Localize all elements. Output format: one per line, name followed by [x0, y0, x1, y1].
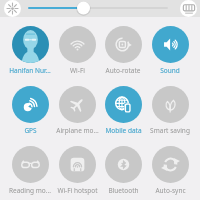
button[interactable]: Hanifan Nur... [8, 26, 52, 75]
staticText: Smart saving [150, 126, 190, 135]
staticText: Wi-Fi hotspot [57, 186, 98, 195]
button[interactable]: Wi-Fi [55, 26, 99, 75]
staticText: Hanifan Nur... [9, 66, 51, 75]
button[interactable]: Auto brightness [180, 0, 197, 17]
staticText: Sound [160, 66, 180, 75]
staticText: Mobile data [105, 126, 142, 135]
staticText: GPS [24, 126, 37, 135]
staticText: Reading mo... [9, 186, 51, 195]
button[interactable]: Auto-sync [148, 146, 192, 195]
button[interactable]: Brightness [4, 0, 21, 17]
staticText: Airplane mo... [56, 126, 99, 135]
button[interactable]: Mobile data [101, 86, 145, 135]
staticText: Wi-Fi [70, 66, 85, 75]
button[interactable]: Smart saving [148, 86, 192, 135]
button[interactable]: Wi-Fi hotspot [55, 146, 99, 195]
button[interactable]: Auto-rotate [101, 26, 145, 75]
button[interactable]: Airplane mo... [55, 86, 99, 135]
staticText: Auto-rotate [105, 66, 141, 75]
button[interactable]: Sound [148, 26, 192, 75]
button[interactable]: GPS [8, 86, 52, 135]
button[interactable] [0, 0, 200, 17]
staticText: Bluetooth [108, 186, 139, 195]
button[interactable]: Bluetooth [101, 146, 145, 195]
staticText: Auto-sync [155, 186, 186, 195]
button[interactable]: Reading mo... [8, 146, 52, 195]
